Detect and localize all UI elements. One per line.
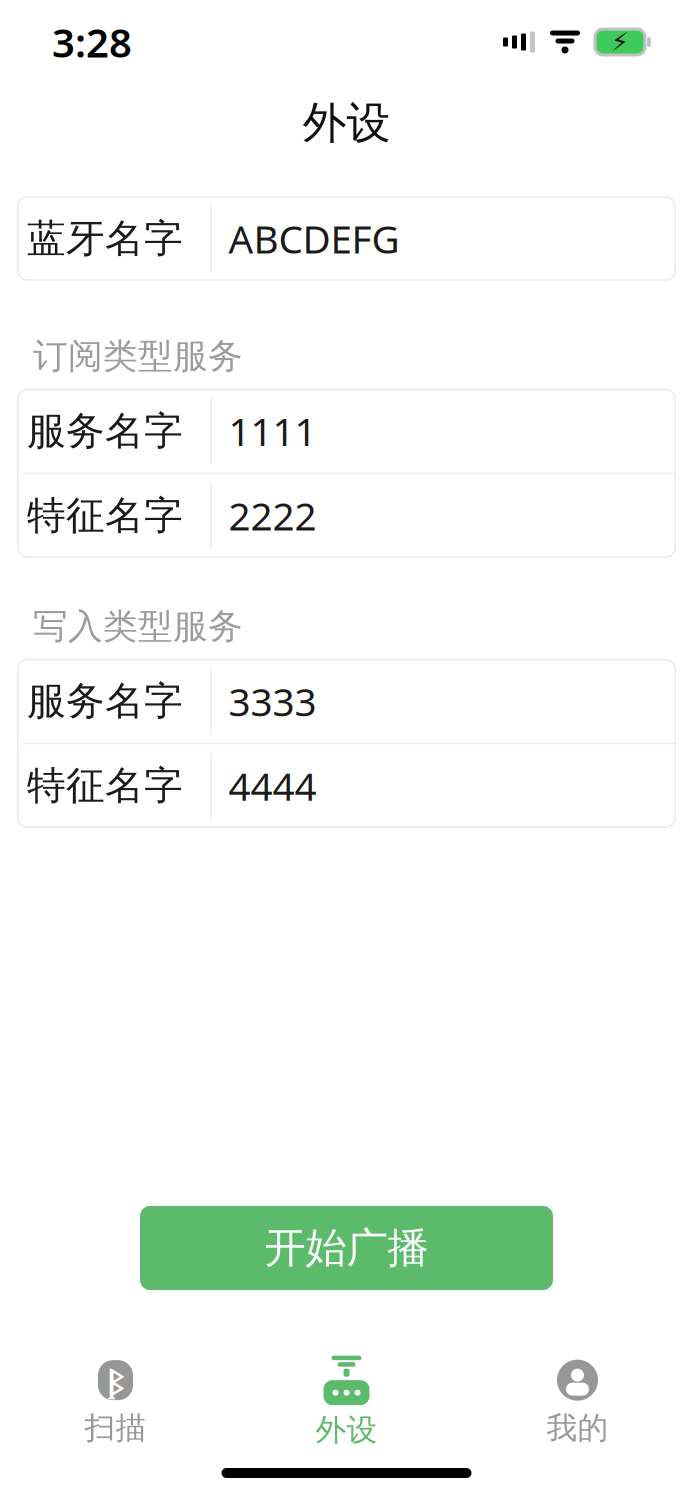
staticText: 1111 [228,405,316,457]
staticText: 3333 [228,675,316,727]
staticText: 2222 [228,490,316,541]
staticText: 我的 [546,1409,608,1447]
staticText: 订阅类型服务 [33,335,243,378]
button[interactable]: 外设 [231,1352,462,1452]
staticText: 扫描 [84,1409,146,1447]
button[interactable]: 我的 [462,1352,693,1452]
staticText: 外设 [302,96,390,150]
staticText: 服务名字 [27,407,183,455]
staticText: 特征名字 [27,762,183,809]
staticText: 开始广播 [264,1223,428,1273]
staticText: 服务名字 [27,677,183,725]
staticText: ᛒ [107,1359,124,1401]
staticText: 4444 [228,760,316,811]
staticText: ⚡︎ [611,28,629,56]
staticText: 蓝牙名字 [27,215,183,262]
button[interactable]: ᛒ [0,1352,231,1452]
staticText: 特征名字 [27,492,183,539]
staticText: 写入类型服务 [33,605,243,648]
staticText: ABCDEFG [228,213,399,264]
staticText: 3:28 [52,15,132,68]
staticText: 外设 [315,1411,377,1449]
button[interactable]: 开始广播 [140,1206,553,1290]
